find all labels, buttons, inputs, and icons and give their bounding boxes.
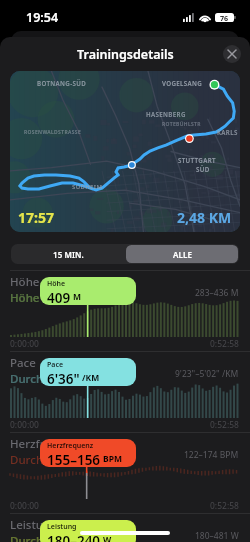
staticText: ALLE	[173, 249, 192, 260]
staticText: KARLS	[217, 128, 238, 136]
staticText: 0:00:00	[10, 419, 39, 431]
button[interactable]: Leistung	[40, 520, 136, 542]
staticText: SÜD	[196, 165, 210, 173]
staticText: Leistung	[47, 522, 77, 532]
staticText: 6'36"	[47, 370, 80, 386]
staticText: 0:52:58	[210, 338, 239, 350]
staticText: 15 MIN.	[53, 249, 84, 260]
staticText: 76	[220, 13, 229, 22]
staticText: Trainingsdetails	[77, 46, 174, 63]
button[interactable]: Karte	[10, 71, 240, 232]
staticText: 0:00:00	[10, 500, 39, 512]
staticText: Pace	[47, 360, 64, 370]
staticText: 19:54	[26, 9, 59, 26]
button[interactable]: Höhe	[40, 277, 136, 305]
staticText: Höhe	[47, 279, 66, 289]
staticText: SÜDHEIM	[72, 183, 103, 191]
staticText: 2,48 KM	[177, 208, 232, 227]
staticText: HASENBERG	[146, 110, 186, 118]
staticText: Leistung	[10, 517, 58, 533]
staticText: 180–481 W	[195, 530, 239, 542]
staticText: ROSENWALDSTRASSE	[24, 129, 82, 136]
staticText: Durchschnitt	[10, 371, 81, 387]
staticText: Durchschnitt	[10, 452, 81, 468]
staticText: Höhe	[10, 274, 40, 290]
staticText: 0:52:58	[210, 500, 239, 512]
staticText: 409	[47, 289, 71, 305]
staticText: M	[73, 291, 82, 303]
staticText: STUTTGART	[178, 156, 216, 164]
staticText: 283–436 M	[195, 287, 239, 299]
staticText: BPM	[103, 453, 122, 465]
staticText: 9'23"–5'02" /KM	[175, 368, 239, 380]
staticText: W	[103, 534, 112, 542]
button[interactable]: Schließen	[223, 45, 241, 63]
staticText: Höhe	[10, 290, 40, 306]
staticText: Pace	[10, 355, 36, 371]
staticText: ROTEBÜHLSTR	[162, 121, 201, 128]
staticText: Durchschnitt	[10, 533, 81, 542]
staticText: VOGELSANG	[162, 79, 203, 87]
staticText: 0:52:58	[210, 419, 239, 431]
button[interactable]: Pace	[40, 358, 136, 386]
button[interactable]: Herzfrequenz	[40, 439, 136, 467]
button[interactable]: 15 MIN.	[11, 244, 125, 264]
staticText: Herzfrequenz	[47, 441, 94, 451]
staticText: 17:57	[18, 208, 54, 227]
staticText: Herzfrequenz	[10, 436, 85, 452]
staticText: 0:00:00	[10, 338, 39, 350]
staticText: BOTNANG-SÜD	[37, 79, 87, 87]
staticText: 122–174 BPM	[184, 449, 239, 461]
staticText: 155–156	[47, 451, 101, 467]
button[interactable]: ALLE	[126, 245, 238, 263]
staticText: 180–240	[47, 532, 101, 542]
staticText: /KM	[82, 372, 100, 384]
